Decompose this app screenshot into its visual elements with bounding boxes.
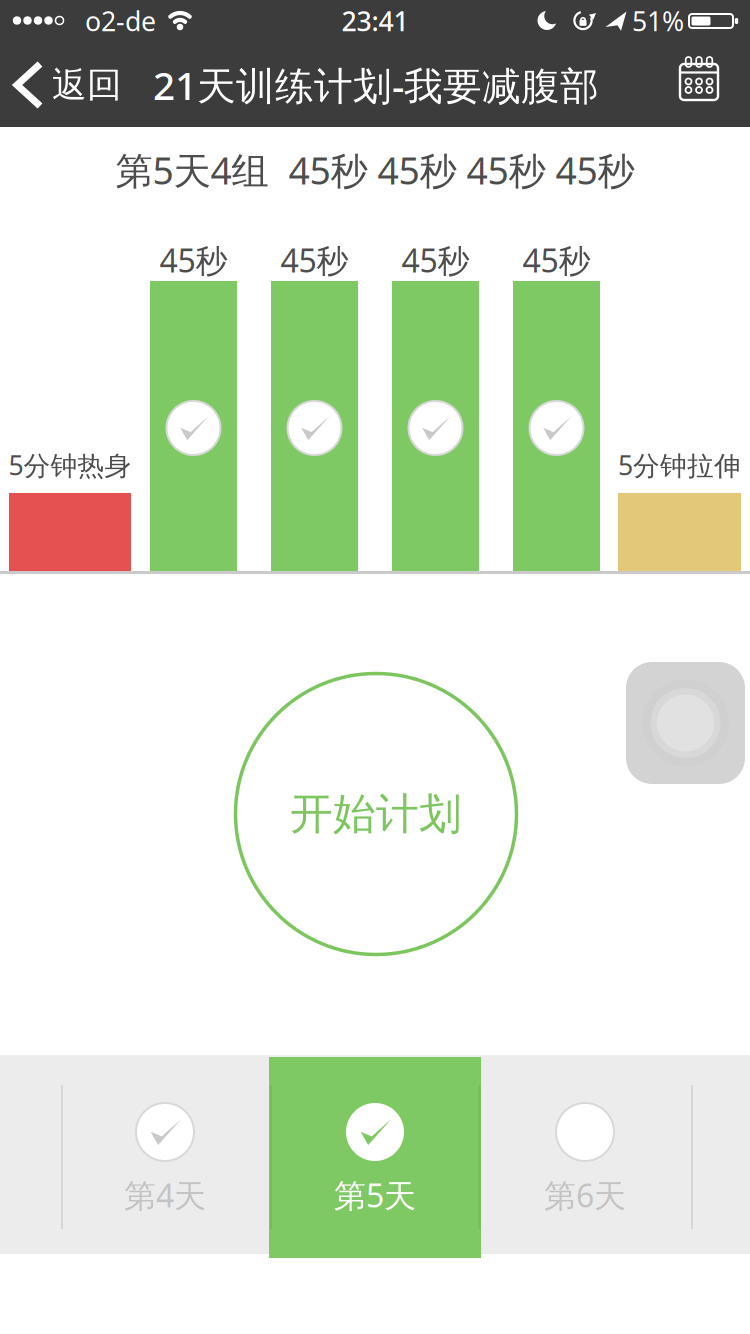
staticText: 51% <box>632 3 684 39</box>
button[interactable]: 开始计划 <box>235 673 516 954</box>
button[interactable]: 第4天 <box>60 1055 270 1255</box>
button[interactable]: 第6天 <box>480 1055 690 1255</box>
staticText: 5分钟拉伸 <box>618 447 741 483</box>
staticText: 第5天 <box>334 1174 416 1216</box>
staticText: 45秒 <box>401 239 469 281</box>
staticText: 返回 <box>52 64 122 106</box>
staticText: 45秒 <box>522 239 590 281</box>
button[interactable]: 返回 <box>17 64 122 106</box>
staticText: 第4天 <box>124 1174 206 1216</box>
staticText: 第5天4组 45秒 45秒 45秒 45秒 <box>115 145 634 195</box>
staticText: 21天训练计划-我要减腹部 <box>153 59 599 111</box>
staticText: 45秒 <box>280 239 348 281</box>
staticText: 23:41 <box>341 3 408 39</box>
button[interactable] <box>671 53 727 109</box>
staticText: 第6天 <box>544 1174 626 1216</box>
staticText: 5分钟热身 <box>8 447 131 483</box>
button[interactable]: 第5天 <box>270 1055 480 1255</box>
staticText: 开始计划 <box>290 788 462 840</box>
staticText: 45秒 <box>159 239 227 281</box>
staticText: o2-de <box>85 3 156 39</box>
button[interactable] <box>626 662 745 784</box>
